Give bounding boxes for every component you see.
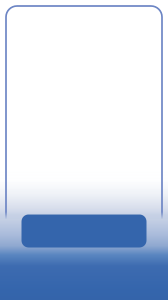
button[interactable]: Continue bbox=[21, 214, 146, 247]
